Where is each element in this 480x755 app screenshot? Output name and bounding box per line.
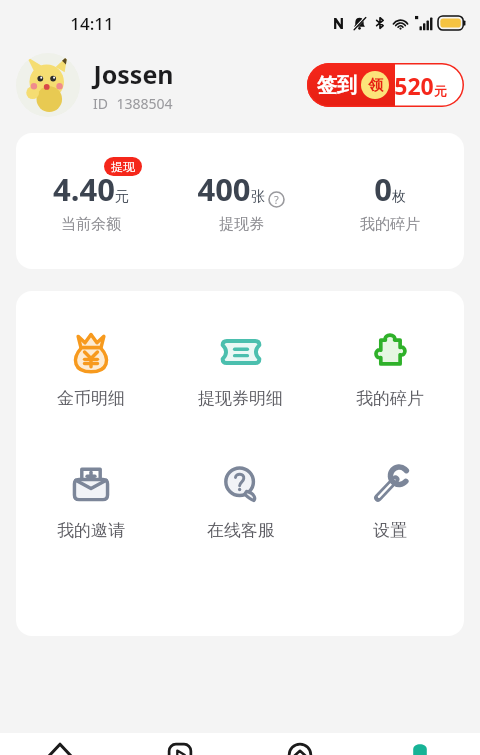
button[interactable]: 4.40 — [16, 133, 166, 269]
button[interactable]: 0 — [315, 133, 464, 269]
button[interactable]: 我的 — [360, 733, 480, 755]
staticText: 我的碎片 — [356, 388, 424, 409]
button[interactable]: 提现券明细 — [166, 329, 315, 409]
staticText: 0 — [374, 168, 392, 210]
staticText: ? — [274, 192, 279, 207]
button[interactable]: 任务 — [240, 733, 360, 755]
staticText: 提现券 — [219, 215, 264, 234]
button[interactable]: 提现 — [104, 157, 142, 176]
staticText: 张 — [251, 188, 265, 206]
button[interactable]: 400 — [166, 133, 315, 269]
button[interactable]: Avatar — [16, 53, 80, 117]
staticText: 14:11 — [70, 12, 114, 35]
staticText: 我的碎片 — [360, 215, 420, 234]
button[interactable]: 签到 — [307, 63, 464, 107]
button[interactable]: 我的邀请 — [16, 461, 166, 541]
button[interactable]: 在线客服 — [166, 461, 315, 541]
button[interactable]: 首页 — [0, 733, 120, 755]
staticText: ID — [93, 94, 108, 113]
staticText: 金币明细 — [57, 388, 125, 409]
staticText: 520 — [394, 70, 434, 101]
staticText: 提现 — [111, 159, 135, 174]
staticText: 签到 — [317, 73, 357, 98]
button[interactable]: 金币明细 — [16, 329, 166, 409]
button[interactable]: 设置 — [315, 461, 464, 541]
staticText: 领 — [368, 76, 383, 95]
button[interactable]: 视频 — [120, 733, 240, 755]
staticText: 400 — [197, 168, 251, 210]
button[interactable]: 帮助 — [268, 191, 285, 208]
staticText: 提现券明细 — [198, 388, 283, 409]
staticText: 1388504 — [116, 94, 173, 113]
staticText: 我的邀请 — [57, 520, 125, 541]
button[interactable]: 我的碎片 — [315, 329, 464, 409]
staticText: Jossen — [93, 57, 174, 91]
staticText: 设置 — [373, 520, 407, 541]
staticText: 在线客服 — [207, 520, 275, 541]
staticText: 枚 — [392, 188, 406, 206]
staticText: 元 — [115, 188, 129, 206]
staticText: 当前余额 — [61, 215, 121, 234]
staticText: 4.40 — [53, 168, 115, 210]
staticText: 元 — [434, 83, 447, 99]
